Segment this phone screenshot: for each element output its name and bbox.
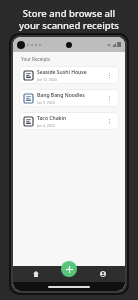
button[interactable]: More options [104,70,114,80]
button[interactable]: Bang Bang Noodles [19,89,119,107]
staticText: Your Receipts [21,56,51,62]
staticText: Seaside Sushi House [37,69,87,76]
staticText: Jan 4, 2024 [37,123,55,128]
button[interactable]: Profile [17,41,25,49]
button[interactable]: More options [104,93,114,103]
staticText: Jan 12, 2024 [37,77,57,82]
staticText: Bang Bang Noodles [37,92,85,99]
staticText: Store and browse all your scanned receip… [6,7,132,32]
button[interactable]: Home [13,266,58,282]
button[interactable]: Seaside Sushi House [19,66,119,84]
staticText: Taco Chakin [37,115,67,122]
button[interactable]: Add receipt [61,261,77,277]
staticText: Jan 9, 2024 [37,100,55,105]
button[interactable]: More options [104,116,114,126]
button[interactable]: Taco Chakin [19,112,119,130]
button[interactable]: Account [80,266,125,282]
